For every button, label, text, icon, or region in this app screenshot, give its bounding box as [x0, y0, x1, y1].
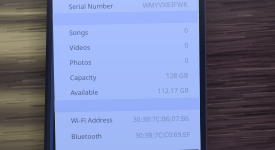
button[interactable]: Available [54, 82, 199, 100]
staticText: Videos [69, 43, 91, 52]
button[interactable]: Photos [54, 52, 199, 70]
staticText: 0 [185, 56, 189, 65]
staticText: Serial Number [68, 1, 114, 11]
staticText: Bluetooth [71, 131, 102, 141]
staticText: 0 [184, 41, 188, 50]
staticText: WMYVX83FWK [142, 0, 188, 10]
staticText: Songs [69, 28, 88, 37]
button[interactable]: Videos [53, 38, 199, 55]
staticText: 30:3B:7C:B6:07:B6 [133, 114, 190, 124]
button[interactable]: Songs [53, 23, 198, 40]
staticText: Capacity [70, 73, 97, 82]
staticText: 30:3B:7C:C0:69:EF [135, 130, 190, 140]
button[interactable]: Wi-Fi Address [55, 109, 200, 128]
staticText: Photos [70, 58, 92, 67]
button[interactable]: Capacity [54, 67, 199, 85]
staticText: 112.17 GB [157, 86, 189, 95]
button[interactable]: Serial Number [52, 0, 198, 13]
staticText: Available [70, 88, 98, 97]
button[interactable]: Bluetooth [55, 125, 200, 144]
staticText: 128 GB [166, 71, 189, 80]
staticText: Wi-Fi Address [71, 115, 113, 125]
staticText: 0 [184, 26, 188, 35]
